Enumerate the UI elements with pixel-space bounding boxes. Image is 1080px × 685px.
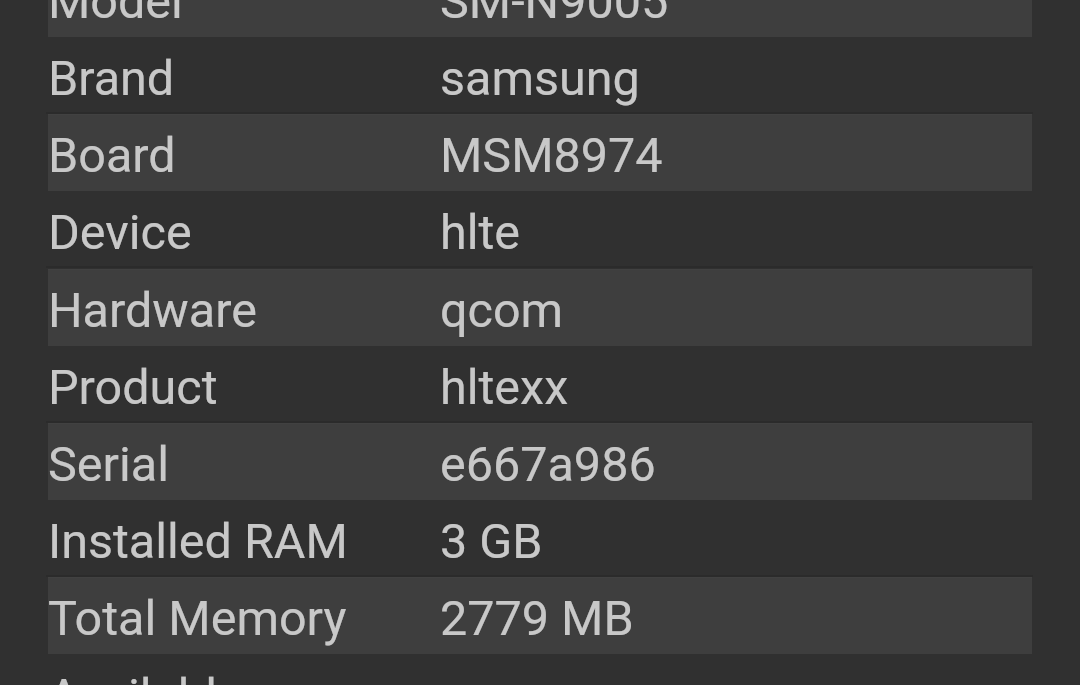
button[interactable]: Available: [0, 655, 1080, 685]
staticText: qcom: [440, 282, 564, 339]
button[interactable]: Serial: [0, 423, 1080, 500]
button[interactable]: Product: [0, 346, 1080, 423]
button[interactable]: Total Memory: [0, 577, 1080, 654]
button[interactable]: Model: [0, 0, 1080, 37]
staticText: Hardware: [48, 282, 257, 339]
staticText: 2779 MB: [440, 590, 634, 647]
staticText: hltexx: [440, 359, 569, 416]
button[interactable]: Brand: [0, 37, 1080, 114]
staticText: Installed RAM: [48, 513, 348, 570]
staticText: Brand: [48, 50, 175, 107]
staticText: 3 GB: [440, 513, 543, 570]
staticText: Serial: [48, 436, 169, 493]
staticText: Board: [48, 127, 176, 184]
staticText: samsung: [440, 50, 640, 107]
staticText: e667a986: [440, 436, 656, 493]
button[interactable]: Hardware: [0, 269, 1080, 346]
staticText: Total Memory: [48, 590, 347, 647]
staticText: MSM8974: [440, 127, 663, 184]
staticText: hlte: [440, 204, 521, 261]
staticText: Model: [48, 0, 183, 30]
staticText: SM-N9005: [440, 0, 669, 30]
staticText: Product: [48, 359, 218, 416]
button[interactable]: Board: [0, 114, 1080, 191]
staticText: Device: [48, 204, 192, 261]
staticText: Available: [48, 668, 243, 685]
button[interactable]: Device: [0, 191, 1080, 268]
button[interactable]: Installed RAM: [0, 500, 1080, 577]
